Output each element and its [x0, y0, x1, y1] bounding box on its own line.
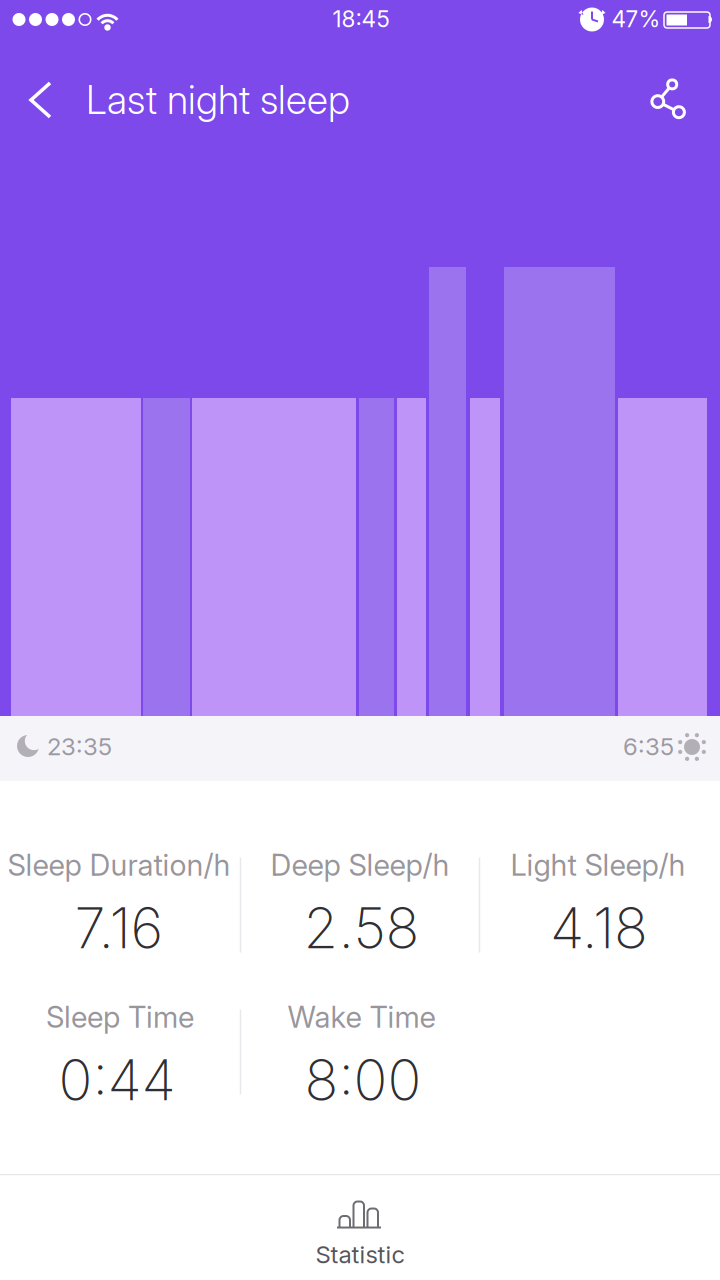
staticText: Wake Time [287, 1000, 435, 1034]
staticText: 4.18 [550, 895, 648, 961]
button[interactable] [634, 68, 704, 132]
button[interactable]: Statistic [0, 1175, 720, 1280]
button[interactable] [0, 60, 60, 140]
staticText: 0:44 [58, 1047, 175, 1113]
staticText: Statistic [315, 1240, 404, 1269]
staticText: 8:00 [304, 1047, 421, 1113]
staticText: 18:45 [332, 6, 389, 32]
staticText: Deep Sleep/h [270, 848, 449, 882]
staticText: 2.58 [303, 895, 419, 961]
staticText: 23:35 [47, 732, 112, 761]
staticText: Sleep Time [46, 1000, 194, 1034]
staticText: Sleep Duration/h [7, 848, 230, 882]
staticText: 6:35 [623, 732, 674, 761]
staticText: 47% [611, 6, 660, 32]
staticText: 7.16 [74, 895, 163, 961]
staticText: Last night sleep [86, 77, 350, 123]
staticText: Light Sleep/h [510, 848, 685, 882]
